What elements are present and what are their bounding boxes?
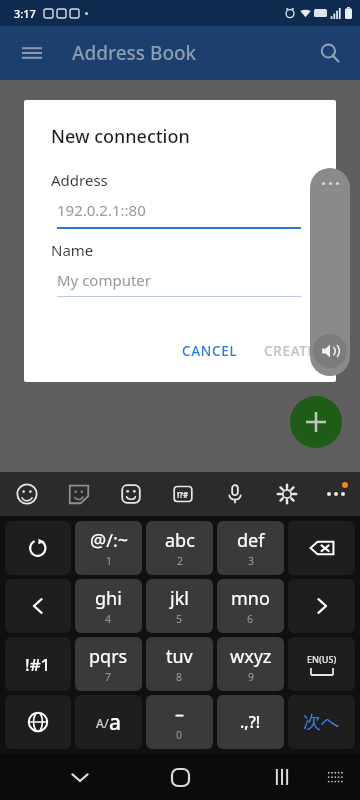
staticText: !#1 — [25, 653, 51, 676]
button[interactable]: pqrs — [75, 637, 142, 691]
staticText: CREATE — [264, 342, 316, 360]
staticText: abc — [165, 528, 195, 553]
button[interactable]: CANCEL — [172, 334, 248, 368]
staticText: – — [175, 702, 184, 727]
button[interactable]: Volume slider — [310, 168, 350, 376]
button[interactable] — [288, 521, 355, 575]
staticText: 1 — [106, 554, 113, 568]
button[interactable]: mno — [217, 579, 284, 633]
button[interactable]: Add new connection — [290, 396, 342, 448]
staticText: My computer — [57, 270, 152, 290]
staticText: !?# — [177, 489, 189, 500]
staticText: def — [237, 528, 265, 553]
button[interactable]: !#1 — [5, 637, 71, 691]
button[interactable]: Emoticons — [110, 472, 152, 516]
staticText: pqrs — [89, 644, 128, 669]
staticText: @/:~ — [90, 528, 128, 553]
button[interactable]: ghi — [75, 579, 142, 633]
button[interactable]: More options — [315, 472, 357, 516]
button[interactable]: .,?! — [217, 695, 284, 749]
staticText: Address Book — [72, 40, 197, 66]
button[interactable]: def — [217, 521, 284, 575]
staticText: a — [109, 708, 122, 737]
button[interactable]: Open navigation menu — [10, 31, 54, 75]
staticText: 0 — [176, 728, 183, 742]
staticText: / — [104, 714, 109, 732]
button[interactable]: Switch keyboard — [318, 760, 352, 794]
staticText: mno — [231, 586, 270, 611]
button[interactable]: – — [146, 695, 213, 749]
staticText: Name — [51, 240, 94, 260]
staticText: 2 — [177, 554, 184, 568]
button[interactable] — [5, 695, 71, 749]
staticText: 5 — [176, 612, 183, 626]
button[interactable]: Hide keyboard — [58, 755, 102, 799]
button[interactable]: Voice input — [214, 472, 256, 516]
staticText: 7 — [105, 670, 112, 684]
button[interactable]: Stickers — [58, 472, 100, 516]
staticText: 3:17 — [14, 6, 36, 21]
staticText: tuv — [166, 644, 193, 669]
button[interactable]: Keyboard settings — [266, 472, 308, 516]
button[interactable]: 次へ — [288, 695, 355, 749]
staticText: CANCEL — [182, 342, 238, 360]
button[interactable]: EN(US) — [288, 637, 355, 691]
staticText: ghi — [95, 586, 122, 611]
button[interactable]: Symbols — [162, 472, 204, 516]
staticText: .,?! — [240, 711, 261, 733]
button[interactable]: Mute — [313, 334, 347, 368]
button[interactable]: abc — [146, 521, 213, 575]
staticText: 192.0.2.1::80 — [57, 200, 146, 220]
button[interactable]: CREATE — [254, 334, 326, 368]
staticText: 8 — [176, 670, 183, 684]
staticText: 4 — [105, 612, 112, 626]
staticText: 6 — [247, 612, 254, 626]
staticText: New connection — [51, 124, 190, 149]
button[interactable]: tuv — [146, 637, 213, 691]
button[interactable]: jkl — [146, 579, 213, 633]
staticText: EN(US) — [307, 653, 337, 665]
button[interactable] — [288, 579, 355, 633]
staticText: A — [96, 715, 104, 731]
button[interactable]: @/:~ — [75, 521, 142, 575]
staticText: Address — [51, 170, 108, 190]
staticText: 3 — [248, 554, 255, 568]
button[interactable]: Emoji — [6, 472, 48, 516]
button[interactable] — [5, 521, 71, 575]
button[interactable]: A — [75, 695, 142, 749]
staticText: 次へ — [303, 711, 340, 734]
staticText: wxyz — [230, 644, 272, 669]
button[interactable]: Home — [158, 755, 202, 799]
button[interactable]: wxyz — [217, 637, 284, 691]
button[interactable] — [5, 579, 71, 633]
staticText: jkl — [170, 586, 189, 611]
button[interactable]: Search — [308, 31, 352, 75]
staticText: 9 — [248, 670, 255, 684]
button[interactable]: Recent apps — [260, 755, 304, 799]
